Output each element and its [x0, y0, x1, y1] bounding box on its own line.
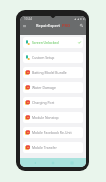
button[interactable]: Batting Model Bundle — [23, 67, 83, 78]
button[interactable]: Mobile Facebook Re-Unit — [23, 127, 83, 138]
button[interactable]: Custom Setup — [23, 52, 83, 63]
button[interactable]: Screen Unlocked — [23, 37, 83, 48]
staticText: 10:24 — [24, 17, 33, 21]
button[interactable]: Home — [49, 159, 57, 167]
staticText: Screen Unlocked — [32, 40, 59, 45]
button[interactable]: Module Nonstop — [23, 112, 83, 123]
button[interactable]: Recents — [68, 159, 76, 167]
button[interactable]: Mobile Transfer — [23, 142, 83, 153]
staticText: PRO — [61, 23, 71, 28]
button[interactable]: Back — [31, 159, 39, 167]
button[interactable]: Search — [78, 22, 85, 29]
staticText: Batting Model Bundle — [32, 70, 67, 75]
staticText: RepairExpert — [36, 23, 61, 28]
staticText: Mobile Facebook Re-Unit — [32, 130, 72, 135]
button[interactable]: Water Damage — [23, 82, 83, 93]
staticText: Water Damage — [32, 85, 56, 90]
staticText: Mobile Transfer — [32, 145, 57, 150]
button[interactable]: Charging Port — [23, 97, 83, 108]
staticText: Module Nonstop — [32, 115, 59, 120]
staticText: Custom Setup — [32, 55, 55, 60]
staticText: Charging Port — [32, 100, 55, 105]
button[interactable]: Menu — [21, 22, 28, 29]
